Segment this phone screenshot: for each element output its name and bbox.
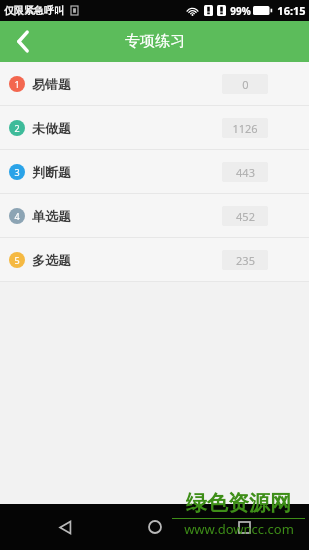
staticText: 16:15 [277,3,306,18]
staticText: 99% [230,4,251,18]
button[interactable]: 4 [0,194,309,237]
staticText: 易错题 [32,76,71,92]
staticText: 235 [236,253,255,268]
button[interactable]: 3 [0,150,309,193]
button[interactable]: Recent apps [220,504,268,550]
staticText: 5 [14,254,20,266]
staticText: 443 [236,165,255,180]
button[interactable]: 2 [0,106,309,149]
staticText: 绿色资源网 [186,490,291,516]
staticText: www.downcc.com [184,520,294,538]
staticText: 判断题 [32,164,71,180]
button[interactable]: Back [0,21,46,62]
staticText: 0 [242,77,249,92]
button[interactable]: Home [131,504,179,550]
staticText: 未做题 [32,120,71,136]
staticText: 2 [14,122,20,134]
staticText: 1126 [232,121,258,136]
staticText: 3 [14,166,20,178]
button[interactable]: 5 [0,238,309,281]
button[interactable]: Back [41,504,89,550]
staticText: 4 [14,210,20,222]
staticText: 1 [14,78,20,90]
staticText: 452 [236,209,255,224]
staticText: 专项练习 [125,32,185,51]
staticText: 仅限紧急呼叫 [4,4,64,17]
button[interactable]: 1 [0,62,309,105]
staticText: 单选题 [32,208,71,224]
staticText: 多选题 [32,252,71,268]
